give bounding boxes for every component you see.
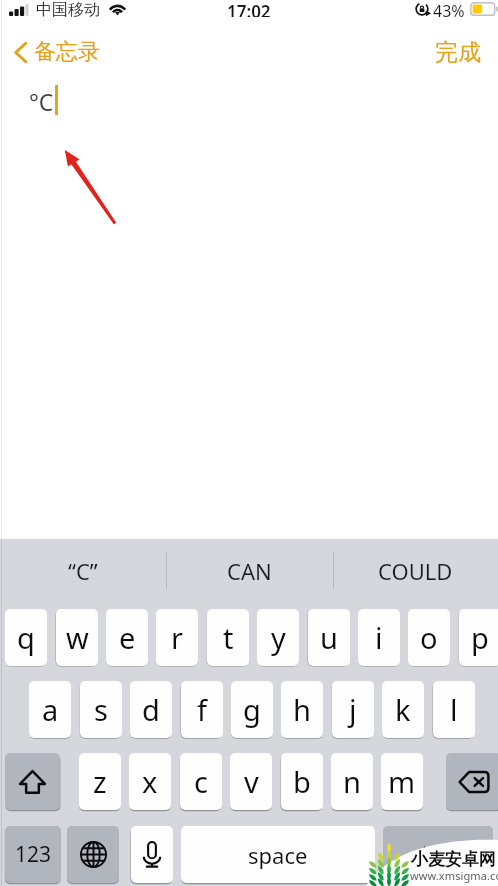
staticText: 43%	[433, 0, 465, 17]
staticText: 123	[15, 840, 52, 869]
button[interactable]: j	[332, 681, 374, 738]
button[interactable]: e	[106, 609, 148, 666]
staticText: °C	[29, 86, 54, 117]
staticText: r	[171, 618, 183, 657]
button[interactable]: x	[129, 753, 171, 810]
button[interactable]: CAN	[166, 540, 332, 602]
staticText: m	[388, 762, 416, 801]
staticText: c	[194, 762, 208, 801]
button[interactable]: w	[56, 609, 98, 666]
button[interactable]: f	[181, 681, 223, 738]
button[interactable]: Shift	[5, 753, 60, 810]
staticText: l	[450, 690, 458, 729]
staticText: y	[271, 618, 286, 657]
staticText: v	[244, 762, 259, 801]
button[interactable]: r	[156, 609, 198, 666]
button[interactable]: 完成	[431, 36, 485, 69]
staticText: e	[119, 618, 136, 657]
button[interactable]: i	[358, 609, 400, 666]
button[interactable]: h	[281, 681, 323, 738]
button[interactable]: b	[281, 753, 323, 810]
staticText: p	[471, 618, 489, 657]
button[interactable]: c	[180, 753, 222, 810]
staticText: z	[93, 762, 107, 801]
staticText: j	[349, 690, 357, 729]
button[interactable]: l	[433, 681, 475, 738]
staticText: 小麦安卓网	[411, 849, 496, 870]
staticText: 换行	[421, 844, 455, 865]
staticText: 17:02	[227, 0, 271, 17]
staticText: w	[66, 618, 89, 657]
button[interactable]: a	[29, 681, 71, 738]
staticText: h	[293, 690, 311, 729]
button[interactable]: m	[381, 753, 423, 810]
button[interactable]: p	[459, 609, 498, 666]
staticText: q	[17, 618, 35, 657]
button[interactable]: 备忘录	[9, 36, 104, 68]
button[interactable]: 123	[5, 826, 61, 883]
button[interactable]: q	[5, 609, 47, 666]
button[interactable]: y	[257, 609, 299, 666]
staticText: t	[223, 618, 234, 657]
staticText: x	[142, 762, 158, 801]
staticText: u	[320, 618, 338, 657]
staticText: o	[420, 618, 438, 657]
button[interactable]: g	[231, 681, 273, 738]
button[interactable]: Change keyboard	[67, 826, 119, 883]
button[interactable]: n	[331, 753, 373, 810]
staticText: k	[395, 690, 411, 729]
staticText: www.xmsigma.com	[410, 868, 498, 883]
button[interactable]: COULD	[332, 540, 498, 602]
staticText: i	[375, 618, 383, 657]
button[interactable]: s	[80, 681, 122, 738]
staticText: 备忘录	[34, 38, 100, 66]
button[interactable]: k	[382, 681, 424, 738]
button[interactable]: “C”	[0, 540, 166, 602]
staticText: CAN	[227, 556, 272, 586]
button[interactable]: v	[230, 753, 272, 810]
staticText: space	[248, 840, 308, 870]
button[interactable]: t	[207, 609, 249, 666]
staticText: f	[197, 690, 207, 729]
button[interactable]: space	[181, 826, 375, 883]
staticText: “C”	[68, 556, 98, 586]
staticText: s	[94, 690, 108, 729]
staticText: 完成	[435, 38, 481, 67]
button[interactable]: u	[308, 609, 350, 666]
button[interactable]: Voice input	[131, 826, 173, 883]
staticText: a	[42, 690, 59, 729]
staticText: d	[142, 690, 160, 729]
button[interactable]: z	[79, 753, 121, 810]
staticText: n	[343, 762, 361, 801]
staticText: 中国移动	[36, 0, 100, 17]
staticText: b	[293, 762, 311, 801]
staticText: g	[243, 690, 261, 729]
button[interactable]: o	[408, 609, 450, 666]
button[interactable]: d	[130, 681, 172, 738]
button[interactable]: Backspace	[446, 753, 498, 810]
button[interactable]: 换行	[383, 826, 493, 883]
staticText: COULD	[378, 556, 453, 586]
